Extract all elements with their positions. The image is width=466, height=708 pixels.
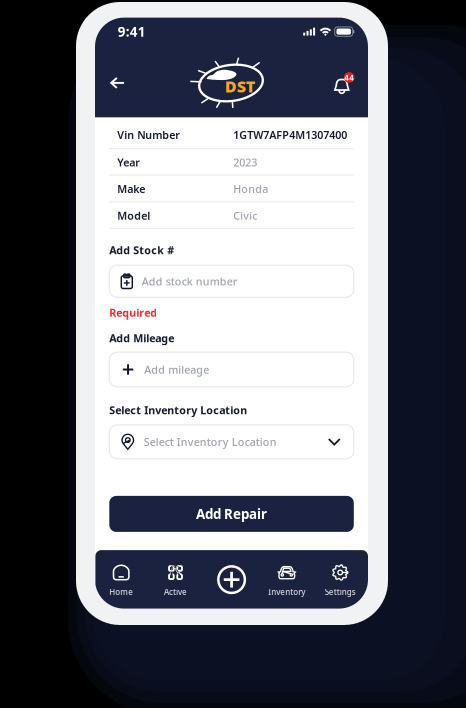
staticText: Inventory	[268, 586, 305, 597]
staticText: Add Mileage	[109, 331, 174, 345]
staticText: Model	[117, 208, 150, 223]
button[interactable]: Notifications	[327, 67, 361, 101]
staticText: 44	[344, 72, 354, 83]
staticText: Active	[164, 586, 187, 597]
staticText: Select Inventory Location	[109, 403, 247, 417]
staticText: Home	[109, 586, 133, 597]
staticText: Year	[117, 155, 140, 169]
staticText: Add stock number	[142, 274, 238, 288]
button[interactable]: Back	[100, 65, 136, 101]
staticText: DST	[225, 76, 255, 97]
button[interactable]: Inventory	[263, 559, 311, 603]
staticText: Add Repair	[196, 505, 267, 523]
staticText: Vin Number	[117, 128, 180, 142]
button[interactable]: Settings	[316, 559, 364, 603]
button[interactable]: Add	[212, 560, 252, 600]
staticText: Settings	[325, 586, 356, 597]
button[interactable]: Home	[97, 559, 145, 603]
staticText: Required	[109, 305, 157, 320]
staticText: Add mileage	[144, 362, 209, 377]
button[interactable]: Add Repair	[109, 496, 354, 532]
staticText: Add Stock #	[109, 243, 174, 257]
staticText: Civic	[233, 208, 257, 223]
staticText: 9:41	[118, 23, 146, 40]
staticText: 1GTW7AFP4M1307400	[233, 128, 347, 142]
staticText: 2023	[233, 155, 257, 169]
button[interactable]: Active	[151, 559, 199, 603]
staticText: Select Inventory Location	[144, 435, 277, 449]
staticText: Honda	[233, 182, 268, 196]
staticText: Make	[117, 182, 145, 196]
